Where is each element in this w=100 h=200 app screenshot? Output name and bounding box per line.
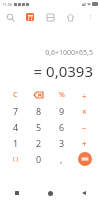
staticText: 11:56 <box>2 2 13 7</box>
staticText: 4 <box>13 121 19 133</box>
staticText: 0 <box>36 153 42 165</box>
staticText: 3 <box>59 137 65 149</box>
button[interactable]: Equals <box>78 152 92 166</box>
staticText: − <box>82 122 87 133</box>
button[interactable]: Home <box>34 186 67 200</box>
button[interactable]: 0 <box>27 151 50 167</box>
button[interactable]: Calculator <box>20 8 40 26</box>
button[interactable]: Converter <box>40 8 60 26</box>
button[interactable]: History <box>0 8 20 26</box>
button[interactable]: × <box>73 103 96 119</box>
button[interactable]: Backspace <box>27 87 50 103</box>
staticText: + <box>82 138 87 149</box>
button[interactable]: − <box>73 119 96 135</box>
button[interactable]: Back <box>67 186 100 200</box>
button[interactable]: More options <box>80 8 100 26</box>
button[interactable]: 1 <box>4 135 27 151</box>
button[interactable]: % <box>50 87 73 103</box>
staticText: C <box>13 90 18 100</box>
staticText: 2 <box>36 137 42 149</box>
staticText: 1 <box>13 137 19 149</box>
staticText: 7 <box>13 105 19 117</box>
button[interactable]: ÷ <box>73 87 96 103</box>
staticText: % <box>59 90 65 100</box>
staticText: 9 <box>59 105 65 117</box>
staticText: ( ) <box>13 155 19 163</box>
button[interactable]: 3 <box>50 135 73 151</box>
button[interactable]: Recents <box>0 186 34 200</box>
button[interactable]: 4 <box>4 119 27 135</box>
button[interactable]: 8 <box>27 103 50 119</box>
button[interactable]: , <box>50 151 73 167</box>
staticText: ÷ <box>82 90 87 101</box>
staticText: × <box>82 106 87 117</box>
button[interactable]: Parentheses <box>4 151 27 167</box>
button[interactable]: C <box>4 87 27 103</box>
button[interactable]: + <box>73 135 96 151</box>
staticText: = 0,0393 <box>33 61 93 81</box>
button[interactable]: 6 <box>50 119 73 135</box>
button[interactable]: 7 <box>4 103 27 119</box>
staticText: 5 <box>36 121 42 133</box>
staticText: 0,6÷1000×65,5 <box>45 48 93 58</box>
staticText: , <box>60 153 63 165</box>
button[interactable]: 9 <box>50 103 73 119</box>
staticText: 8 <box>36 105 42 117</box>
button[interactable]: 5 <box>27 119 50 135</box>
staticText: 6 <box>59 121 65 133</box>
button[interactable]: Unit conversion <box>60 8 80 26</box>
button[interactable]: 2 <box>27 135 50 151</box>
